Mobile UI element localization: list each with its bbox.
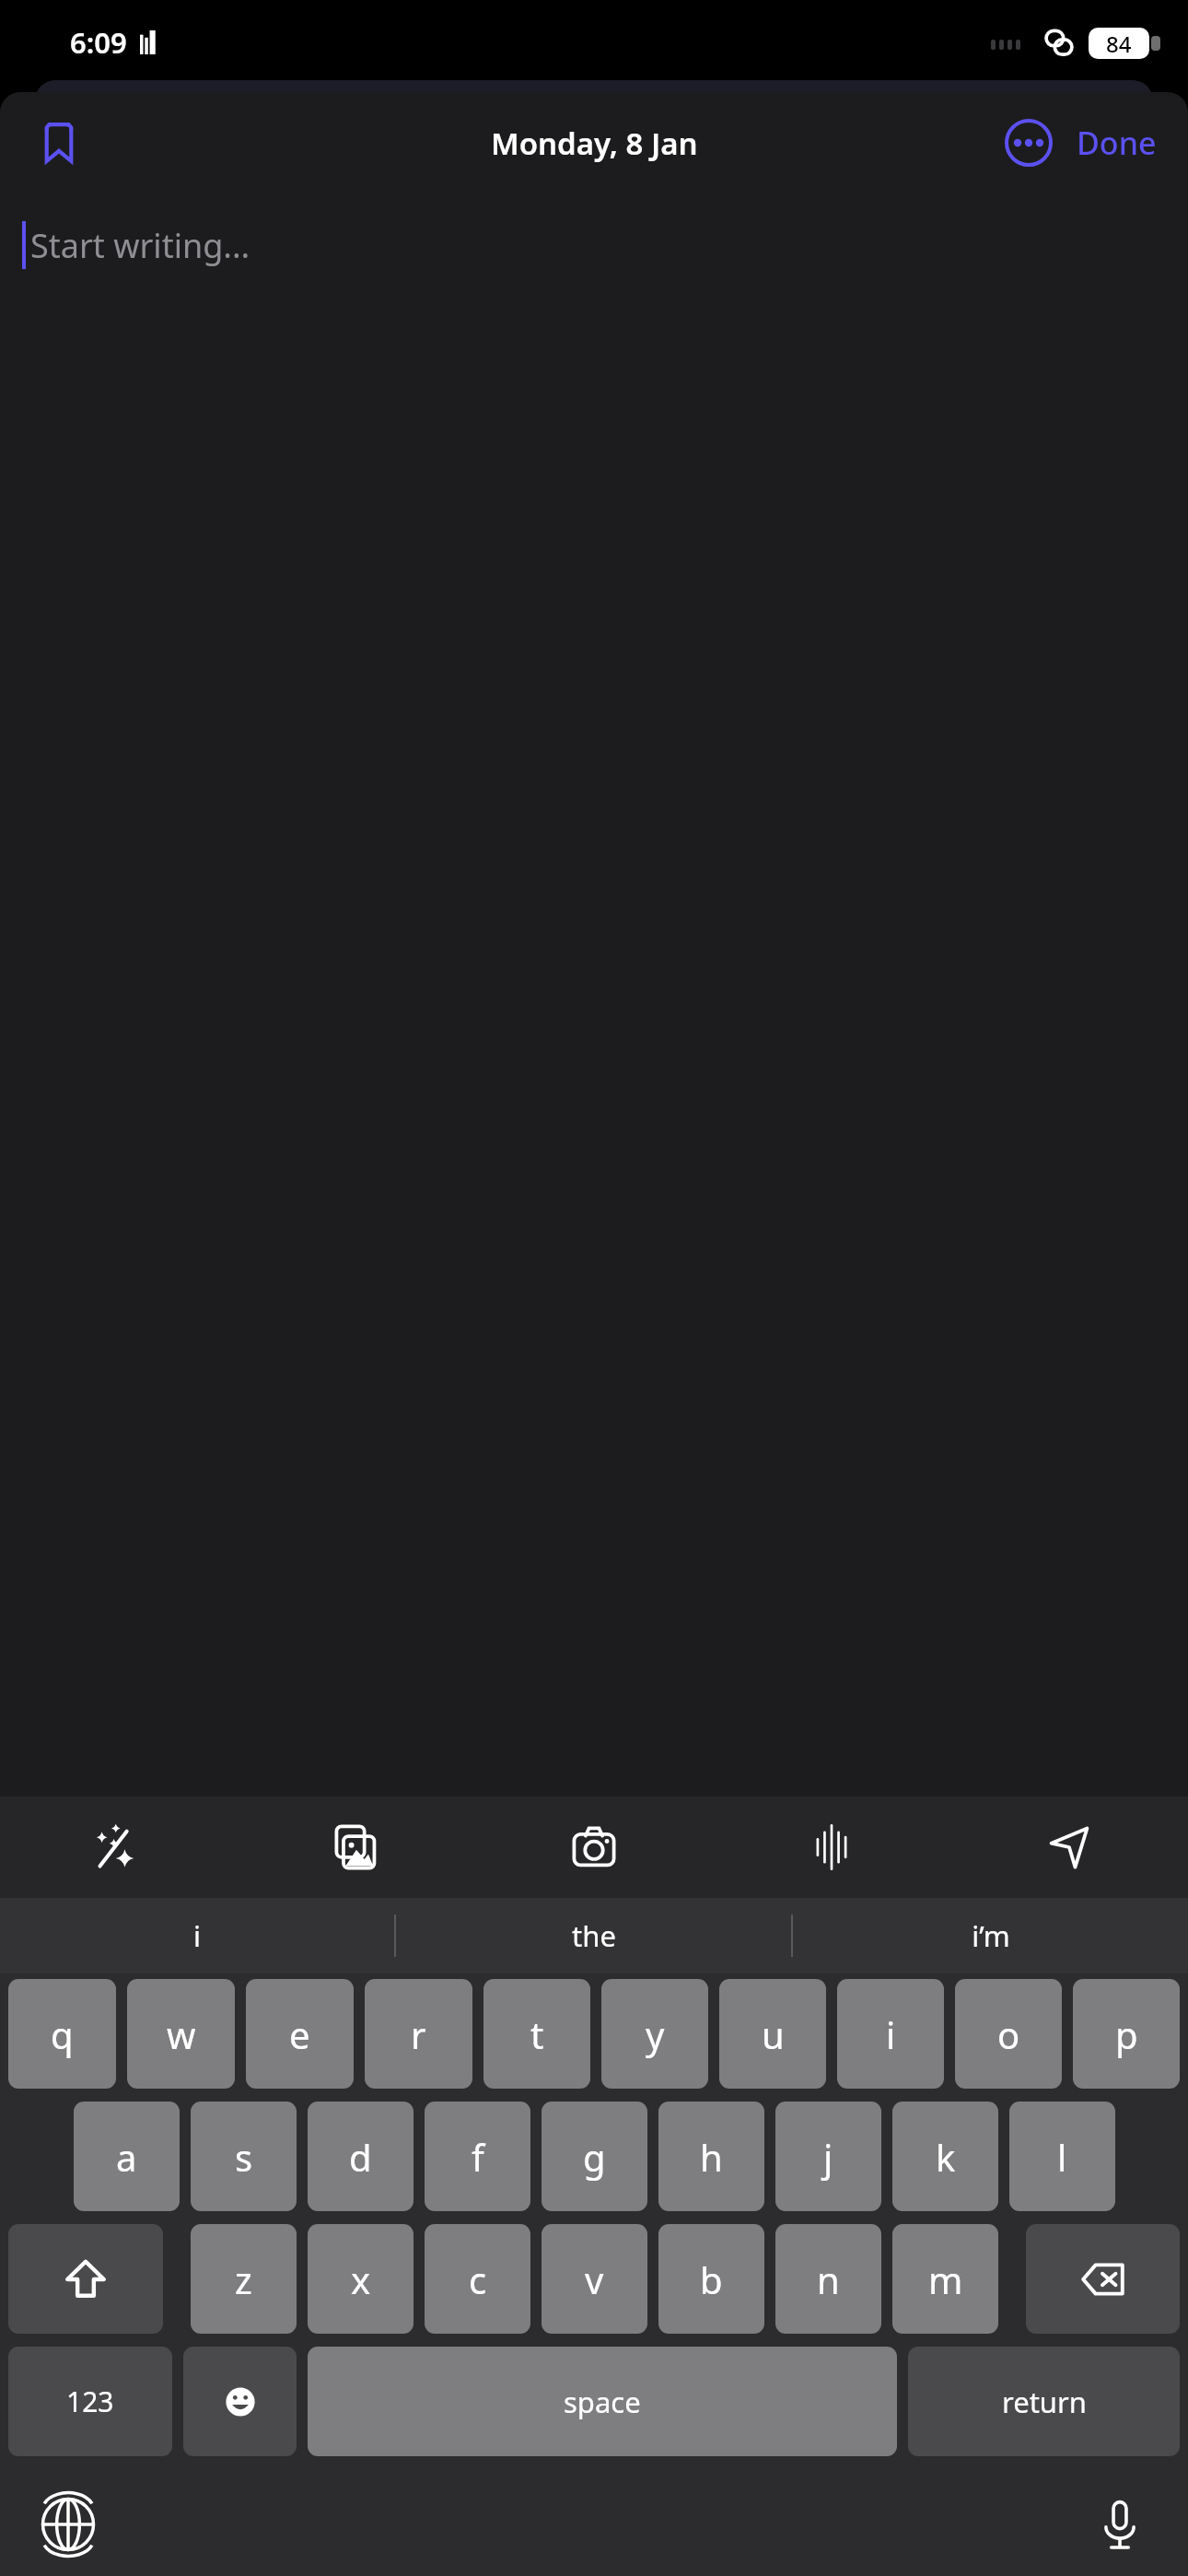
button[interactable]: a (74, 2102, 180, 2211)
button[interactable]: i (837, 1979, 944, 2089)
button[interactable]: y (601, 1979, 708, 2089)
staticText: v (585, 2254, 604, 2304)
staticText: i’m (972, 1916, 1010, 1955)
staticText: r (411, 2009, 426, 2059)
staticText: a (116, 2132, 137, 2182)
button[interactable]: Bookmark (24, 108, 94, 178)
staticText: 84 (1106, 29, 1132, 59)
staticText: return (1002, 2383, 1087, 2421)
button[interactable]: More options (994, 108, 1064, 178)
staticText: j (823, 2132, 833, 2182)
staticText: x (351, 2254, 371, 2304)
button[interactable]: k (892, 2102, 998, 2211)
button[interactable]: p (1073, 1979, 1180, 2089)
staticText: p (1115, 2009, 1138, 2059)
button[interactable]: Change keyboard (33, 2489, 103, 2559)
button[interactable]: g (542, 2102, 647, 2211)
button[interactable]: Done (1069, 109, 1164, 177)
button[interactable]: space (308, 2347, 897, 2456)
button[interactable]: b (658, 2224, 764, 2334)
button[interactable]: m (892, 2224, 998, 2334)
staticText: h (700, 2132, 723, 2182)
button[interactable]: v (542, 2224, 647, 2334)
staticText: i (193, 1916, 201, 1955)
button[interactable]: return (908, 2347, 1180, 2456)
staticText: u (762, 2009, 785, 2059)
staticText: e (289, 2009, 310, 2059)
button[interactable]: j (775, 2102, 881, 2211)
staticText: z (235, 2254, 252, 2304)
button[interactable]: the (396, 1898, 791, 1973)
button[interactable]: d (308, 2102, 413, 2211)
staticText: i (886, 2009, 896, 2059)
button[interactable]: i’m (793, 1898, 1188, 1973)
button[interactable]: i (0, 1898, 394, 1973)
button[interactable]: Effects (0, 1797, 238, 1898)
staticText: Start writing... (30, 223, 250, 268)
button[interactable]: z (191, 2224, 297, 2334)
button[interactable]: Photos (238, 1797, 475, 1898)
staticText: o (997, 2009, 1020, 2059)
button[interactable]: Emoji (183, 2347, 297, 2456)
button[interactable]: r (365, 1979, 472, 2089)
staticText: f (472, 2132, 484, 2182)
button[interactable]: t (483, 1979, 590, 2089)
button[interactable]: n (775, 2224, 881, 2334)
staticText: b (700, 2254, 723, 2304)
button[interactable]: q (8, 1979, 116, 2089)
button[interactable]: Camera (475, 1797, 713, 1898)
staticText: Monday, 8 Jan (491, 123, 698, 164)
staticText: l (1057, 2132, 1067, 2182)
button[interactable]: e (246, 1979, 354, 2089)
button[interactable]: Dictation (1085, 2489, 1155, 2559)
button[interactable]: Backspace (1026, 2224, 1180, 2334)
staticText: n (817, 2254, 840, 2304)
staticText: t (530, 2009, 544, 2059)
button[interactable]: Shift (8, 2224, 163, 2334)
button[interactable]: o (955, 1979, 1062, 2089)
staticText: q (51, 2009, 74, 2059)
staticText: k (936, 2132, 956, 2182)
button[interactable]: x (308, 2224, 413, 2334)
staticText: c (469, 2254, 487, 2304)
button[interactable]: 123 (8, 2347, 172, 2456)
button[interactable]: u (719, 1979, 826, 2089)
staticText: d (349, 2132, 372, 2182)
staticText: 123 (66, 2383, 114, 2420)
button[interactable]: Audio (713, 1797, 950, 1898)
button[interactable]: Location (950, 1797, 1188, 1898)
button[interactable]: s (191, 2102, 297, 2211)
button[interactable]: l (1009, 2102, 1115, 2211)
staticText: the (572, 1916, 616, 1955)
staticText: y (646, 2009, 665, 2059)
button[interactable]: w (127, 1979, 235, 2089)
staticText: Done (1077, 122, 1157, 164)
staticText: 6:09 (70, 23, 127, 62)
button[interactable]: f (425, 2102, 530, 2211)
button[interactable]: c (425, 2224, 530, 2334)
staticText: s (235, 2132, 253, 2182)
staticText: m (928, 2254, 963, 2304)
staticText: space (564, 2383, 641, 2421)
button[interactable]: h (658, 2102, 764, 2211)
staticText: w (167, 2009, 196, 2059)
staticText: g (583, 2132, 606, 2182)
